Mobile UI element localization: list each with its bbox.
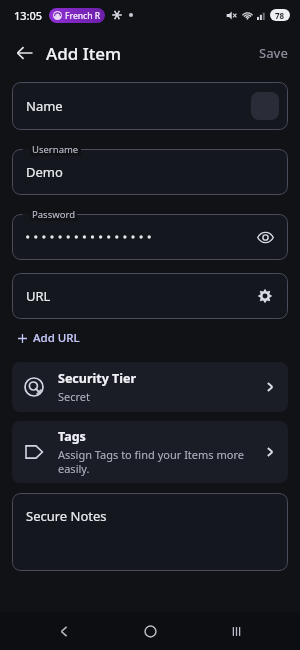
staticText: 13:05 <box>14 8 43 23</box>
button[interactable]: Security Tier <box>12 362 288 412</box>
button[interactable]: Show password <box>250 222 280 252</box>
staticText: French R <box>65 10 101 22</box>
staticText: Demo <box>26 163 63 181</box>
staticText: Secure Notes <box>26 507 107 525</box>
button[interactable]: Demo <box>12 149 288 195</box>
button[interactable]: Secure Notes <box>12 493 288 571</box>
staticText: 78 <box>275 10 285 21</box>
staticText: Username <box>32 143 79 156</box>
button[interactable]: Recents <box>214 612 258 650</box>
button[interactable]: Add URL <box>12 325 86 351</box>
button[interactable]: URL <box>12 273 288 319</box>
staticText: Password <box>32 208 75 221</box>
button[interactable]: Home <box>128 612 172 650</box>
staticText: Tags <box>58 428 86 445</box>
button[interactable]: Item icon <box>251 92 279 120</box>
button[interactable]: Save <box>247 38 300 68</box>
staticText: Save <box>259 44 288 62</box>
staticText: URL <box>26 287 51 305</box>
button[interactable]: URL settings <box>250 281 280 311</box>
button[interactable]: Back <box>8 36 42 70</box>
staticText: Add Item <box>46 42 122 65</box>
button[interactable]: Back <box>42 612 86 650</box>
button[interactable]: Tags <box>12 421 288 483</box>
staticText: Name <box>26 97 63 115</box>
button[interactable]: Show password <box>12 214 288 260</box>
staticText: Assign Tags to find your Items more easi… <box>58 447 258 476</box>
staticText: Add URL <box>33 330 80 346</box>
staticText: Secret <box>58 389 91 404</box>
staticText: Security Tier <box>58 370 137 387</box>
button[interactable]: Name <box>12 82 288 130</box>
